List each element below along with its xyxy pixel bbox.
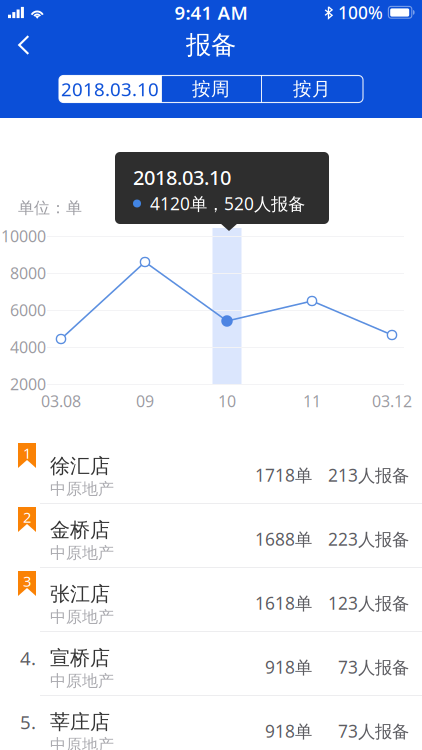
staticText: 123人报备 xyxy=(328,591,409,614)
staticText: 莘庄店 xyxy=(50,710,110,734)
staticText: 中原地产 xyxy=(50,479,114,499)
staticText: 1 xyxy=(23,443,31,463)
staticText: 1718单 xyxy=(255,463,312,486)
button[interactable]: 2 xyxy=(0,504,422,567)
staticText: 徐汇店 xyxy=(50,454,110,478)
button[interactable]: Back xyxy=(0,24,44,65)
button[interactable]: 1 xyxy=(0,440,422,503)
staticText: 10000 xyxy=(1,225,46,247)
staticText: 1688单 xyxy=(255,527,312,550)
staticText: 2018.03.10 xyxy=(133,164,231,191)
staticText: 03.08 xyxy=(41,390,81,412)
staticText: 中原地产 xyxy=(50,607,114,627)
staticText: 6000 xyxy=(10,299,46,321)
staticText: 11 xyxy=(303,390,321,412)
button[interactable]: 3 xyxy=(0,568,422,631)
staticText: 2000 xyxy=(10,373,46,395)
staticText: 宣桥店 xyxy=(50,646,110,670)
staticText: 3 xyxy=(23,571,31,591)
staticText: 10 xyxy=(218,390,236,412)
staticText: 213人报备 xyxy=(328,463,409,486)
staticText: 1618单 xyxy=(255,591,312,614)
button[interactable]: 5. xyxy=(0,696,422,750)
staticText: 4. xyxy=(20,646,36,670)
staticText: 按月 xyxy=(293,77,331,100)
button[interactable]: 4. xyxy=(0,632,422,695)
staticText: 223人报备 xyxy=(328,527,409,550)
staticText: 9:41 AM xyxy=(174,0,247,25)
button[interactable]: 按月 xyxy=(261,75,363,102)
button[interactable]: 按周 xyxy=(161,75,261,102)
staticText: 中原地产 xyxy=(50,671,114,691)
staticText: 100% xyxy=(338,1,383,24)
staticText: 单位：单 xyxy=(18,198,82,218)
staticText: 09 xyxy=(136,390,154,412)
staticText: 按周 xyxy=(192,77,230,100)
staticText: 73人报备 xyxy=(338,719,409,742)
staticText: 918单 xyxy=(265,719,312,742)
staticText: 2 xyxy=(23,507,31,527)
button[interactable]: 2018.03.10 xyxy=(59,75,161,102)
staticText: 73人报备 xyxy=(338,655,409,678)
staticText: 中原地产 xyxy=(50,735,114,750)
staticText: 8000 xyxy=(10,262,46,284)
staticText: 2018.03.10 xyxy=(61,77,159,101)
staticText: 4000 xyxy=(10,336,46,358)
staticText: 张江店 xyxy=(50,582,110,606)
staticText: 中原地产 xyxy=(50,543,114,563)
staticText: 4120单，520人报备 xyxy=(150,192,305,215)
staticText: 03.12 xyxy=(372,390,412,412)
staticText: 报备 xyxy=(186,29,236,60)
staticText: 918单 xyxy=(265,655,312,678)
staticText: 5. xyxy=(20,710,36,734)
staticText: 金桥店 xyxy=(50,518,110,542)
